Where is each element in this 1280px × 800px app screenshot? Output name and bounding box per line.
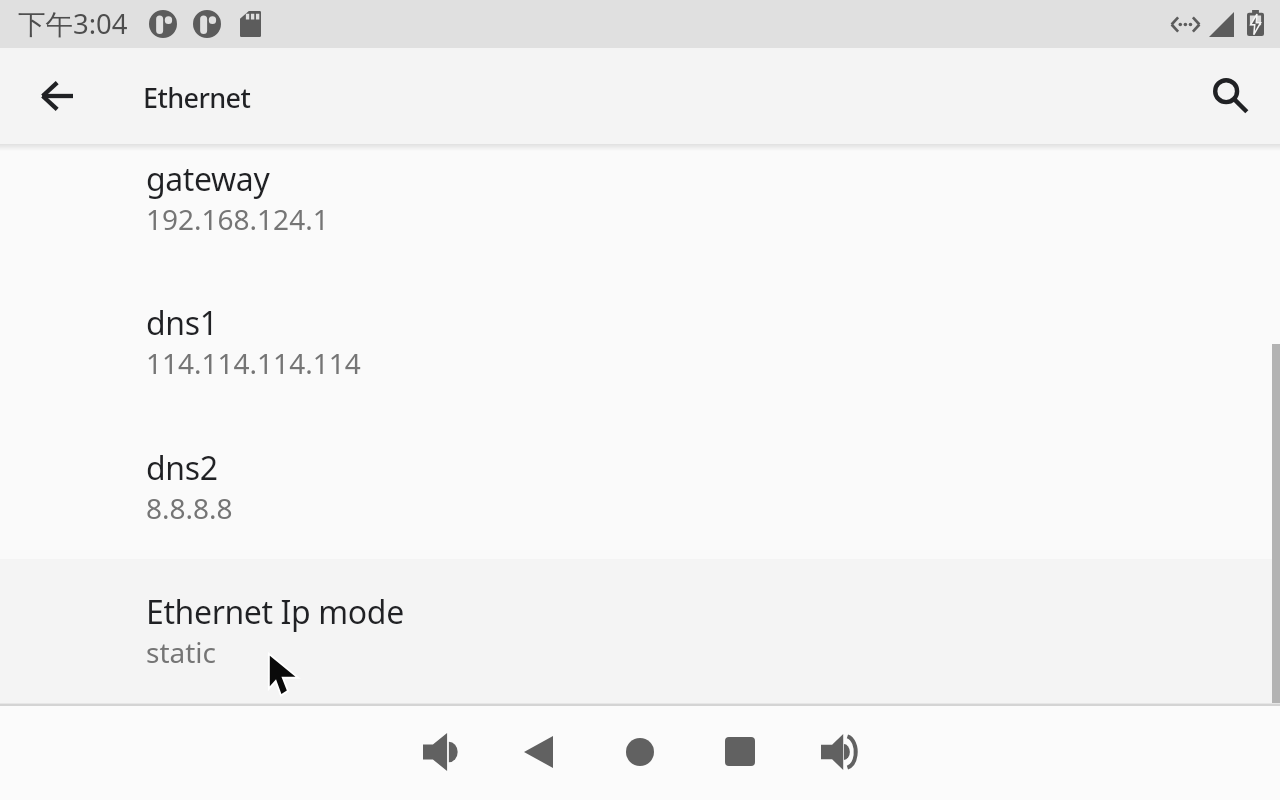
staticText: dns1 (146, 301, 218, 345)
button[interactable]: dns2 (0, 415, 1280, 560)
staticText: dns2 (146, 446, 218, 490)
staticText: gateway (146, 157, 270, 201)
button[interactable]: Recents (713, 725, 767, 778)
staticText: Ethernet Ip mode (146, 590, 404, 634)
staticText: 192.168.124.1 (146, 200, 329, 238)
button[interactable]: Ethernet Ip mode (0, 559, 1280, 704)
staticText: static (146, 633, 217, 671)
button[interactable]: dns1 (0, 270, 1280, 415)
button[interactable]: Volume up (809, 722, 870, 782)
staticText: 8.8.8.8 (146, 489, 233, 527)
button[interactable]: Back (512, 724, 565, 780)
button[interactable]: Home (614, 726, 666, 778)
button[interactable]: Search (1183, 48, 1279, 144)
button[interactable]: Back (8, 48, 104, 144)
button[interactable]: Volume down (411, 721, 468, 783)
button[interactable]: gateway (0, 144, 1280, 271)
staticText: 114.114.114.114 (146, 344, 361, 382)
staticText: 下午3:04 (18, 5, 128, 43)
staticText: Ethernet (143, 79, 251, 116)
